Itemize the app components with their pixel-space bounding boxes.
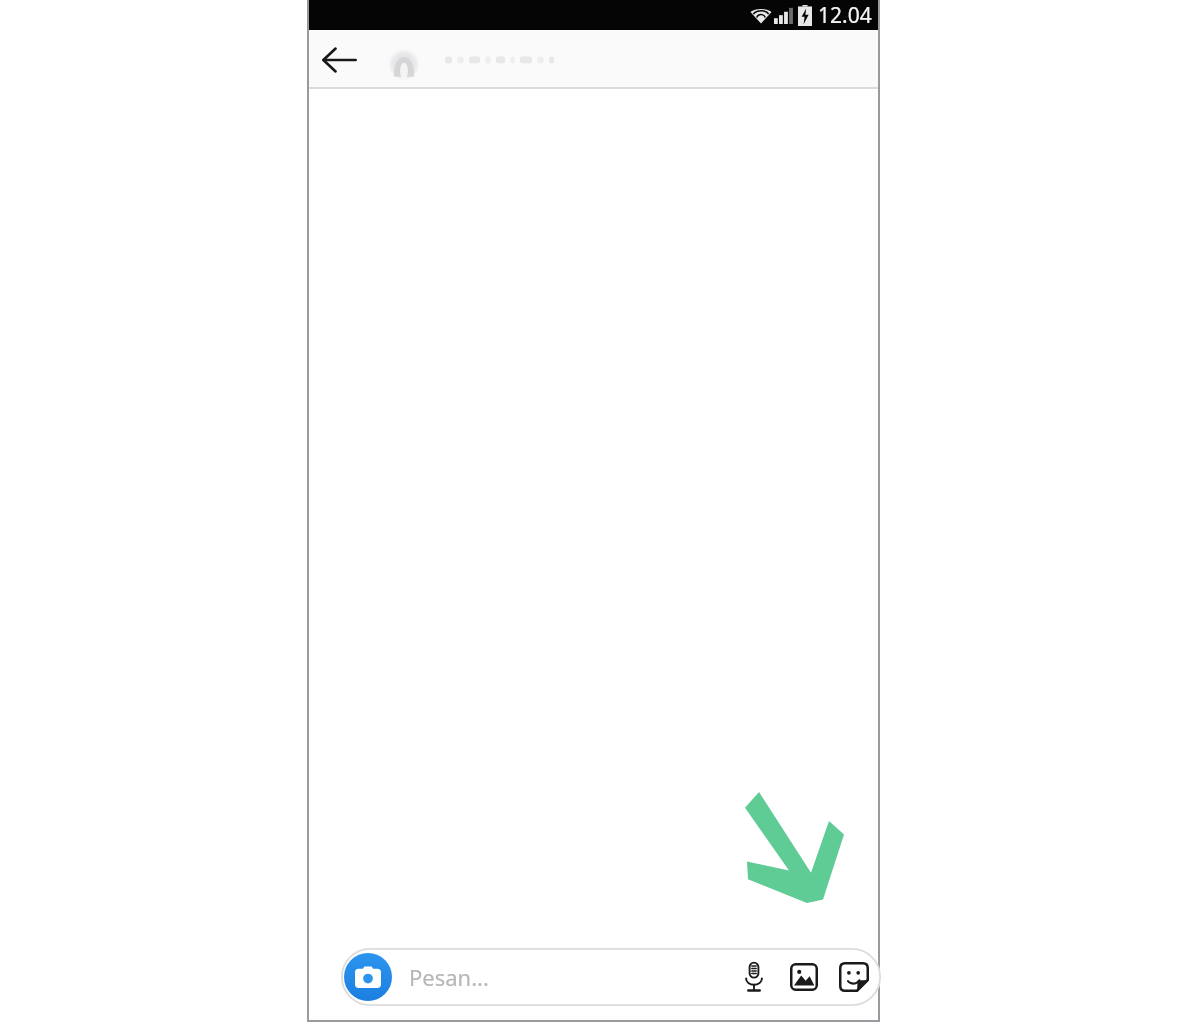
button[interactable]: Camera	[341, 948, 881, 1006]
button[interactable]: Voice message	[732, 955, 776, 999]
button[interactable]: Camera	[344, 953, 392, 1001]
button[interactable]: Stickers	[832, 955, 876, 999]
button[interactable]: Gallery	[782, 955, 826, 999]
staticText: Pesan...	[409, 962, 489, 992]
staticText: 12.04	[818, 1, 872, 30]
button[interactable]: Back	[317, 38, 361, 82]
